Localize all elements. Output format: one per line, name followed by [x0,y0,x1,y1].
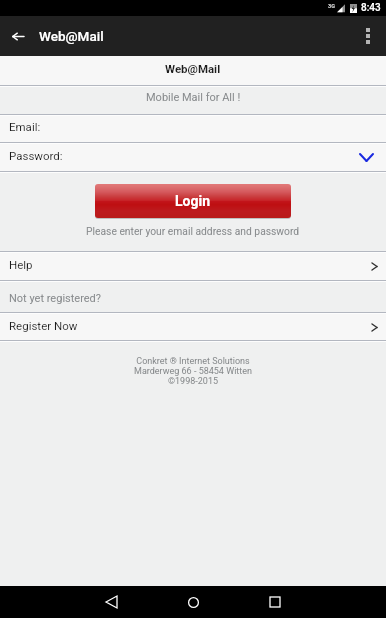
staticText: Mobile Mail for All ! [146,91,241,104]
staticText: Register Now [9,319,78,332]
button[interactable]: Help [0,253,386,280]
staticText: Web@Mail [165,62,221,75]
button[interactable]: Back [70,586,152,618]
staticText: Conkret ® Internet Solutions Marderweg 6… [0,356,386,386]
button[interactable]: Password: [0,144,386,171]
staticText: 8:43 [361,2,381,14]
button[interactable]: Email: [0,116,386,142]
staticText: Help [9,258,33,271]
staticText: Please enter your email address and pass… [86,225,300,237]
staticText: 3G [328,3,335,9]
button[interactable]: Home [152,586,234,618]
staticText: Email: [9,120,41,133]
staticText: Login [175,193,211,209]
staticText: Not yet registered? [9,292,102,305]
button[interactable]: Recent apps [234,586,316,618]
button[interactable]: Navigate up [0,16,36,56]
button[interactable]: More options [350,16,386,56]
staticText: Password: [9,149,63,162]
button[interactable]: Login [95,184,291,218]
staticText: Web@Mail [39,28,104,44]
button[interactable]: Register Now [0,314,386,340]
